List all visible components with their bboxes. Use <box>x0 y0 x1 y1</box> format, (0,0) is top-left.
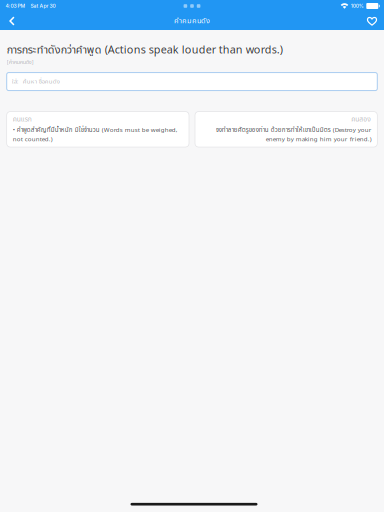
button[interactable]: คนสอง <box>195 112 377 147</box>
button[interactable]: คนแรก <box>7 112 189 147</box>
staticText: • คำพูด​สำคัญ​ที่มี​น้ำหนัก มิใช่​จำนวน … <box>13 126 178 144</box>
staticText: [คำคมคนดัง] <box>7 58 34 67</box>
staticText: 4:03 PM <box>5 3 25 9</box>
staticText: ใส่: ค้นหา ชื่อคนดัง <box>12 77 60 86</box>
button[interactable]: ใส่: ค้นหา ชื่อคนดัง <box>7 73 377 91</box>
staticText: การกระทำดังกว่าคำพูด (Actions speak loud… <box>7 42 283 58</box>
staticText: จงทำลายศัตรูของท่าน ด้วยการทำให้เขาเป็นม… <box>215 126 371 144</box>
staticText: คนแรก <box>13 114 32 125</box>
staticText: Sat Apr 30 <box>30 3 55 9</box>
button[interactable]: Favourite <box>363 12 381 30</box>
button[interactable]: Back <box>3 12 21 30</box>
staticText: คำคมคนดัง <box>174 15 210 27</box>
staticText: คนสอง <box>351 114 371 125</box>
staticText: 100% <box>351 3 364 9</box>
